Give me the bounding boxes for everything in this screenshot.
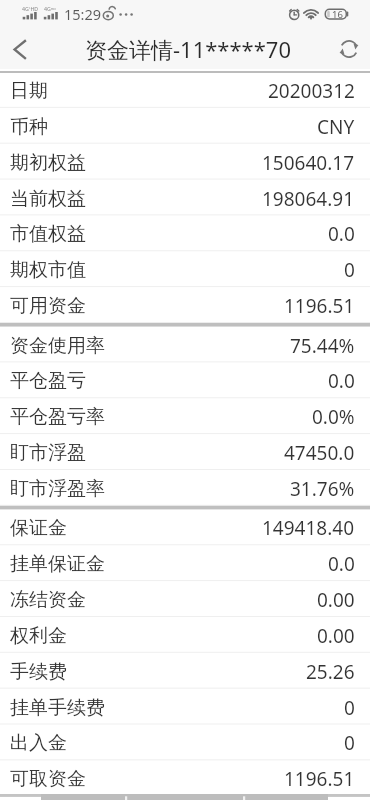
- staticText: 期权市值: [10, 258, 86, 282]
- staticText: 75.44%: [290, 333, 355, 359]
- button[interactable]: 期权市值: [0, 251, 370, 287]
- button[interactable]: 可用资金: [0, 287, 370, 323]
- staticText: 平仓盈亏率: [10, 405, 105, 429]
- staticText: 盯市浮盈率: [10, 477, 105, 501]
- staticText: 可用资金: [10, 294, 86, 318]
- staticText: 期初权益: [10, 151, 86, 175]
- button[interactable]: Back: [0, 28, 42, 69]
- staticText: 15:29: [64, 4, 102, 24]
- staticText: 47450.0: [284, 440, 355, 466]
- button[interactable]: Account: [184, 794, 277, 800]
- staticText: 冻结资金: [10, 588, 86, 612]
- button[interactable]: 权利金: [0, 617, 370, 653]
- staticText: 当前权益: [10, 187, 86, 211]
- staticText: 平仓盈亏: [10, 369, 86, 393]
- staticText: 25.26: [306, 659, 355, 685]
- staticText: 1196.51: [284, 293, 355, 319]
- staticText: 150640.17: [262, 150, 355, 176]
- button[interactable]: 盯市浮盈率: [0, 470, 370, 506]
- staticText: 出入金: [10, 731, 67, 755]
- staticText: 16: [332, 8, 343, 21]
- button[interactable]: 日期: [0, 72, 370, 108]
- button[interactable]: 冻结资金: [0, 581, 370, 617]
- staticText: 0.0: [328, 368, 355, 394]
- staticText: 权利金: [10, 624, 67, 648]
- staticText: 20200312: [268, 78, 355, 104]
- button[interactable]: 可取资金: [0, 760, 370, 796]
- button[interactable]: Orders: [92, 794, 184, 800]
- button[interactable]: 资金使用率: [0, 327, 370, 362]
- button[interactable]: 保证金: [0, 509, 370, 545]
- button[interactable]: Refresh: [327, 28, 370, 69]
- staticText: 4G⁺HD: [22, 5, 39, 12]
- staticText: 4Gᴴᴰ: [44, 5, 56, 12]
- staticText: 保证金: [10, 516, 67, 540]
- button[interactable]: 手续费: [0, 653, 370, 689]
- button[interactable]: 当前权益: [0, 180, 370, 215]
- staticText: 挂单保证金: [10, 552, 105, 576]
- staticText: 0: [344, 695, 355, 721]
- staticText: 198064.91: [262, 186, 355, 212]
- staticText: 市值权益: [10, 222, 86, 246]
- staticText: 0.00: [317, 587, 355, 613]
- button[interactable]: 出入金: [0, 724, 370, 760]
- staticText: 挂单手续费: [10, 696, 105, 720]
- button[interactable]: Home: [0, 794, 92, 800]
- staticText: 资金使用率: [10, 334, 105, 358]
- staticText: 资金详情-11*****70: [85, 34, 292, 64]
- button[interactable]: 平仓盈亏率: [0, 398, 370, 434]
- staticText: 0.0: [328, 221, 355, 247]
- button[interactable]: 盯市浮盈: [0, 434, 370, 470]
- button[interactable]: 币种: [0, 108, 370, 144]
- staticText: 0.0%: [312, 404, 355, 430]
- staticText: 0: [344, 730, 355, 756]
- staticText: 149418.40: [262, 515, 355, 541]
- button[interactable]: 挂单保证金: [0, 545, 370, 581]
- button[interactable]: 期初权益: [0, 144, 370, 180]
- button[interactable]: More: [277, 794, 370, 800]
- staticText: 0: [344, 257, 355, 283]
- staticText: 盯市浮盈: [10, 441, 86, 465]
- staticText: 币种: [10, 115, 48, 139]
- staticText: CNY: [317, 114, 355, 140]
- button[interactable]: 市值权益: [0, 215, 370, 251]
- staticText: 0.00: [317, 623, 355, 649]
- staticText: 可取资金: [10, 767, 86, 791]
- button[interactable]: 挂单手续费: [0, 689, 370, 724]
- staticText: 日期: [10, 79, 48, 103]
- staticText: 31.76%: [290, 476, 355, 502]
- staticText: 手续费: [10, 660, 67, 684]
- staticText: 1196.51: [284, 766, 355, 792]
- staticText: 0.0: [328, 551, 355, 577]
- button[interactable]: 平仓盈亏: [0, 362, 370, 398]
